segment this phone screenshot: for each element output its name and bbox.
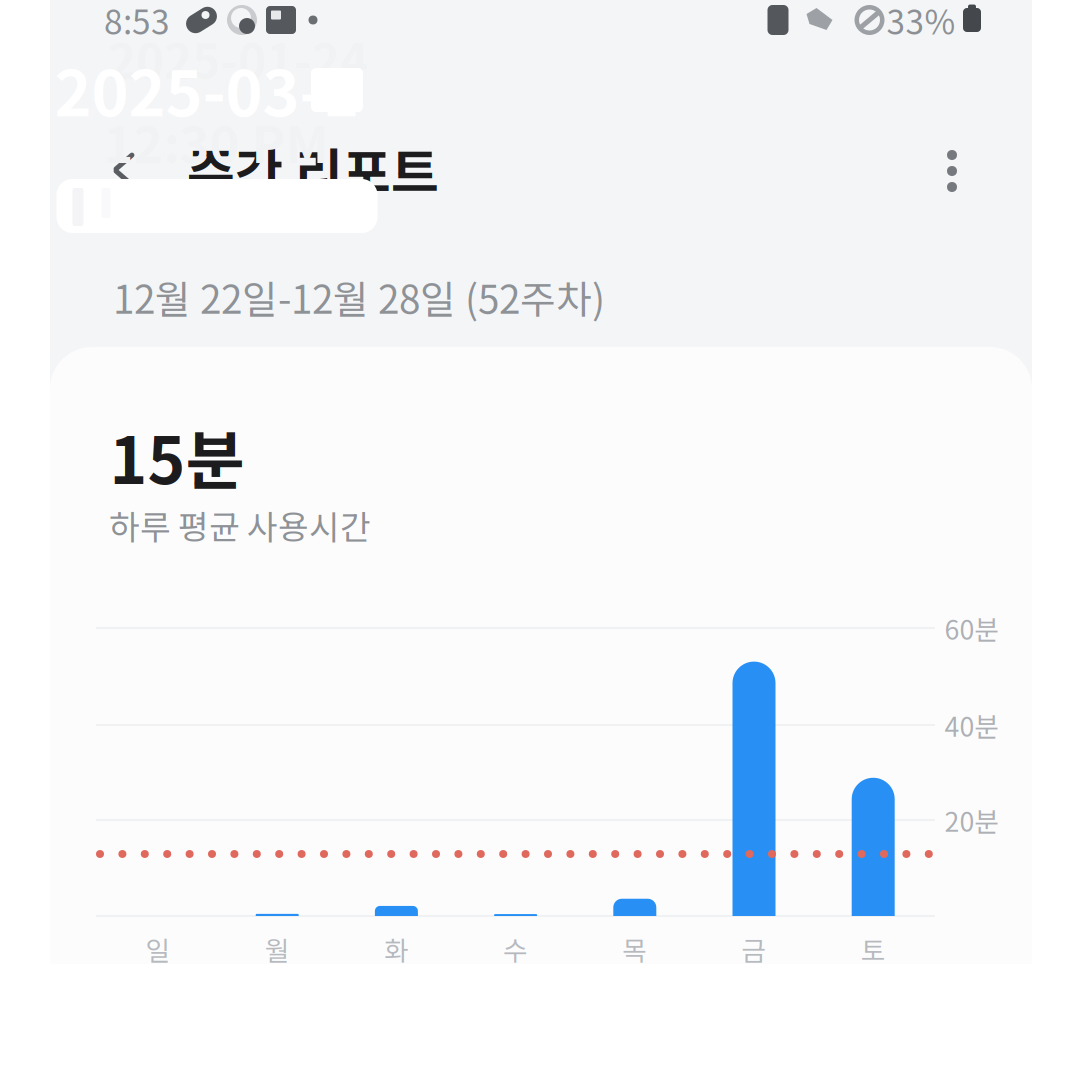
staticText: 주간 리포트 xyxy=(187,131,439,207)
staticText: 12:30 PM xyxy=(103,104,328,178)
staticText: 수 xyxy=(503,930,528,968)
staticText: 금 xyxy=(741,930,766,968)
staticText: 2025-03-1 xyxy=(54,44,359,134)
staticText: 8:53 xyxy=(104,0,170,44)
staticText: 화 xyxy=(384,930,409,968)
staticText: 2025-01-24 xyxy=(108,23,368,93)
staticText: 15분 xyxy=(109,410,244,502)
staticText: 토 xyxy=(861,930,886,968)
staticText: 60분 xyxy=(944,609,999,647)
staticText: 월 xyxy=(265,930,290,968)
staticText: 하루 평균 사용시간 xyxy=(109,501,371,549)
button[interactable]: More options xyxy=(920,139,984,203)
button[interactable]: Back xyxy=(82,128,166,212)
staticText: 12월 22일-12월 28일 (52주차) xyxy=(113,269,605,325)
staticText: 20분 xyxy=(944,801,999,839)
staticText: 40분 xyxy=(944,706,999,744)
staticText: 33% xyxy=(886,0,955,44)
staticText: 일 xyxy=(145,930,170,968)
staticText: 목 xyxy=(622,930,647,968)
